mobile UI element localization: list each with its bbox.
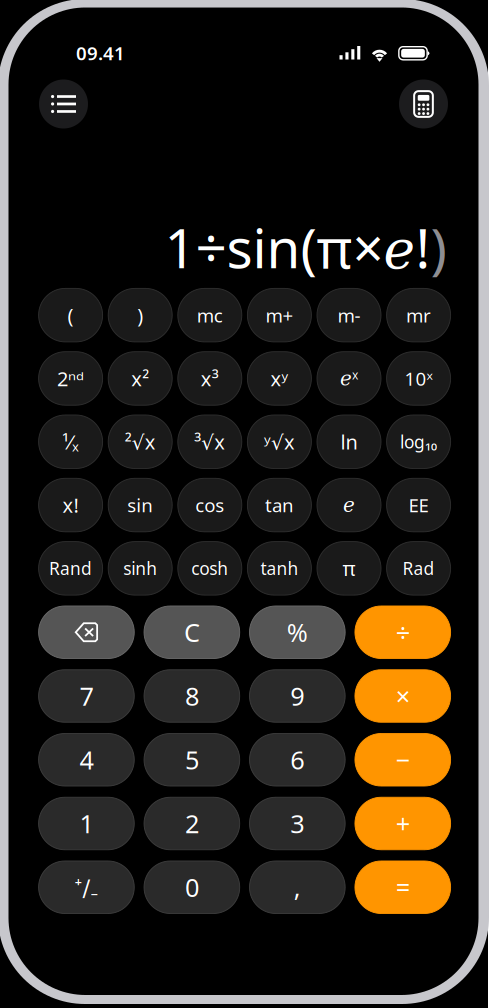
staticText: ,	[294, 870, 301, 904]
staticText: ²√x	[125, 428, 156, 455]
button[interactable]: %	[249, 606, 345, 658]
button[interactable]: ²√x	[108, 415, 172, 468]
staticText: π	[342, 555, 355, 582]
button[interactable]: EE	[387, 478, 451, 532]
button[interactable]: 7	[39, 670, 134, 722]
staticText: sinh	[123, 557, 157, 580]
button[interactable]: 2	[144, 797, 240, 850]
staticText: 2ⁿᵈ	[57, 365, 84, 392]
staticText: EE	[409, 493, 429, 517]
button[interactable]: ÷	[355, 606, 451, 658]
button[interactable]: 5	[144, 733, 240, 786]
button[interactable]: ln	[317, 415, 381, 468]
staticText: 1	[79, 807, 93, 840]
staticText: ex	[340, 367, 358, 390]
staticText: ¹⁄ₓ	[62, 428, 79, 455]
staticText: cos	[195, 493, 224, 517]
staticText: +	[396, 807, 410, 840]
button[interactable]: +	[355, 797, 451, 850]
staticText: ÷	[396, 615, 410, 649]
staticText: )	[137, 302, 143, 328]
button[interactable]: 1	[39, 797, 134, 850]
staticText: sin	[127, 493, 153, 517]
staticText: 7	[79, 679, 93, 713]
staticText: C	[184, 615, 200, 649]
staticText: 09.41	[76, 41, 125, 65]
button[interactable]: C	[144, 606, 240, 658]
staticText: (	[68, 302, 74, 328]
staticText: Rad	[403, 557, 435, 580]
staticText: tan	[265, 493, 294, 517]
staticText: 4	[79, 743, 93, 776]
button[interactable]: ʸ√x	[247, 415, 311, 468]
button[interactable]: ³√x	[178, 415, 242, 468]
staticText: %	[287, 615, 308, 649]
staticText: ³√x	[194, 428, 225, 455]
button[interactable]: 3	[249, 797, 345, 850]
staticText: )	[431, 211, 447, 283]
button[interactable]: mc	[178, 288, 242, 342]
button[interactable]: x³	[178, 352, 242, 405]
staticText: Rand	[49, 557, 92, 580]
staticText: e	[343, 493, 355, 517]
button[interactable]: 9	[249, 670, 345, 722]
button[interactable]: (	[39, 288, 103, 342]
button[interactable]: log₁₀	[387, 415, 451, 468]
staticText: ⁺∕₋	[74, 872, 98, 902]
button[interactable]: x!	[39, 478, 103, 532]
staticText: 0	[185, 870, 199, 904]
button[interactable]: )	[108, 288, 172, 342]
button[interactable]: Rand	[39, 542, 103, 595]
staticText: −	[396, 743, 410, 776]
button[interactable]: Calculator modes	[399, 79, 448, 128]
staticText: 6	[290, 743, 304, 776]
button[interactable]: cosh	[178, 542, 242, 595]
button[interactable]: ⁺∕₋	[39, 861, 134, 913]
button[interactable]: m-	[317, 288, 381, 342]
button[interactable]: History	[39, 79, 88, 128]
staticText: tanh	[260, 557, 298, 580]
button[interactable]: 8	[144, 670, 240, 722]
button[interactable]: ,	[249, 861, 345, 913]
staticText: mc	[197, 303, 223, 328]
button[interactable]: e	[317, 478, 381, 532]
button[interactable]: 10ˣ	[387, 352, 451, 405]
button[interactable]: 2ⁿᵈ	[39, 352, 103, 405]
button[interactable]: π	[317, 542, 381, 595]
button[interactable]: tan	[247, 478, 311, 532]
staticText: 8	[185, 679, 199, 713]
button[interactable]: 0	[144, 861, 240, 913]
button[interactable]: Rad	[387, 542, 451, 595]
button[interactable]: =	[355, 861, 451, 913]
button[interactable]: ex	[317, 352, 381, 405]
button[interactable]: mr	[387, 288, 451, 342]
button[interactable]: sin	[108, 478, 172, 532]
staticText: 2	[185, 807, 199, 840]
button[interactable]: x²	[108, 352, 172, 405]
staticText: m+	[265, 303, 293, 328]
staticText: =	[396, 870, 410, 904]
button[interactable]: 4	[39, 733, 134, 786]
staticText: x!	[63, 492, 79, 518]
button[interactable]: sinh	[108, 542, 172, 595]
button[interactable]: m+	[247, 288, 311, 342]
button[interactable]: 6	[249, 733, 345, 786]
staticText: mr	[406, 303, 431, 328]
staticText: x³	[201, 365, 219, 392]
staticText: ʸ√x	[264, 428, 295, 455]
staticText: x²	[131, 365, 149, 392]
staticText: log₁₀	[400, 430, 437, 453]
staticText: 10ˣ	[405, 366, 433, 391]
staticText: ln	[340, 428, 357, 455]
staticText: 9	[290, 679, 304, 713]
button[interactable]: xʸ	[247, 352, 311, 405]
button[interactable]: −	[355, 733, 451, 786]
button[interactable]: ×	[355, 670, 451, 722]
button[interactable]: cos	[178, 478, 242, 532]
staticText: m-	[337, 303, 360, 328]
staticText: 1÷sin(π×e!	[165, 211, 431, 283]
button[interactable]: tanh	[247, 542, 311, 595]
staticText: ×	[396, 679, 410, 713]
button[interactable]: ¹⁄ₓ	[39, 415, 103, 468]
button[interactable]: Delete	[39, 606, 134, 658]
